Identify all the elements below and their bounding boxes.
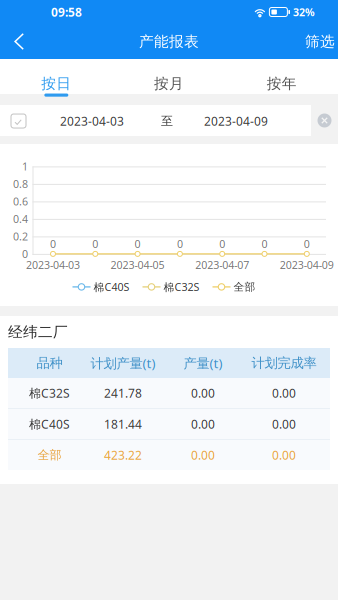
staticText: 2023-04-09	[204, 113, 268, 129]
button[interactable]: 按年	[225, 59, 338, 94]
staticText: 经纬二厂	[8, 323, 68, 341]
staticText: 至	[161, 114, 173, 128]
staticText: 0	[219, 237, 225, 251]
staticText: 计划产量(t)	[90, 354, 155, 372]
staticText: 423.22	[104, 447, 142, 463]
staticText: 棉C32S	[163, 280, 199, 294]
staticText: 筛选	[305, 32, 335, 50]
staticText: 0	[50, 237, 56, 251]
staticText: 棉C40S	[29, 416, 70, 432]
staticText: 0	[261, 237, 267, 251]
staticText: 品种	[36, 355, 62, 371]
button[interactable]: 2023-04-03	[0, 105, 311, 136]
button[interactable]: Back	[0, 24, 58, 59]
button[interactable]: 筛选	[280, 24, 338, 59]
staticText: 0.00	[191, 416, 215, 432]
staticText: 0.00	[272, 385, 296, 401]
staticText: 产能报表	[139, 32, 199, 50]
staticText: 2023-04-07	[195, 258, 249, 272]
button[interactable]: 按月	[113, 59, 225, 94]
staticText: 计划完成率	[251, 355, 316, 371]
staticText: 全部	[37, 448, 61, 462]
staticText: 0	[22, 247, 28, 261]
staticText: 0.00	[272, 447, 296, 463]
button[interactable]: 按日	[0, 59, 113, 94]
staticText: 0.2	[13, 229, 28, 243]
staticText: 按日	[41, 74, 71, 92]
staticText: 0.00	[191, 385, 215, 401]
staticText: 按月	[154, 74, 184, 92]
staticText: 0.00	[272, 416, 296, 432]
staticText: 0.00	[191, 447, 215, 463]
staticText: 181.44	[104, 416, 142, 432]
staticText: 09:58	[51, 4, 82, 20]
staticText: 按年	[267, 74, 297, 92]
staticText: 241.78	[104, 385, 142, 401]
staticText: 0	[177, 237, 183, 251]
staticText: 2023-04-03	[26, 258, 80, 272]
staticText: 2023-04-05	[111, 258, 165, 272]
staticText: 2023-04-03	[60, 113, 124, 129]
staticText: 0.6	[13, 194, 28, 208]
staticText: 0	[135, 237, 141, 251]
staticText: 棉C40S	[93, 280, 129, 294]
staticText: 32%	[293, 5, 315, 19]
staticText: 0.8	[13, 177, 28, 191]
staticText: 0.4	[13, 212, 28, 226]
staticText: 1	[22, 159, 28, 173]
staticText: 全部	[233, 280, 255, 293]
staticText: 棉C32S	[29, 385, 70, 401]
button[interactable]: Clear date range	[0, 105, 27, 136]
staticText: 产量(t)	[183, 354, 222, 372]
staticText: 0	[92, 237, 98, 251]
staticText: 2023-04-09	[280, 258, 334, 272]
staticText: 0	[304, 237, 310, 251]
